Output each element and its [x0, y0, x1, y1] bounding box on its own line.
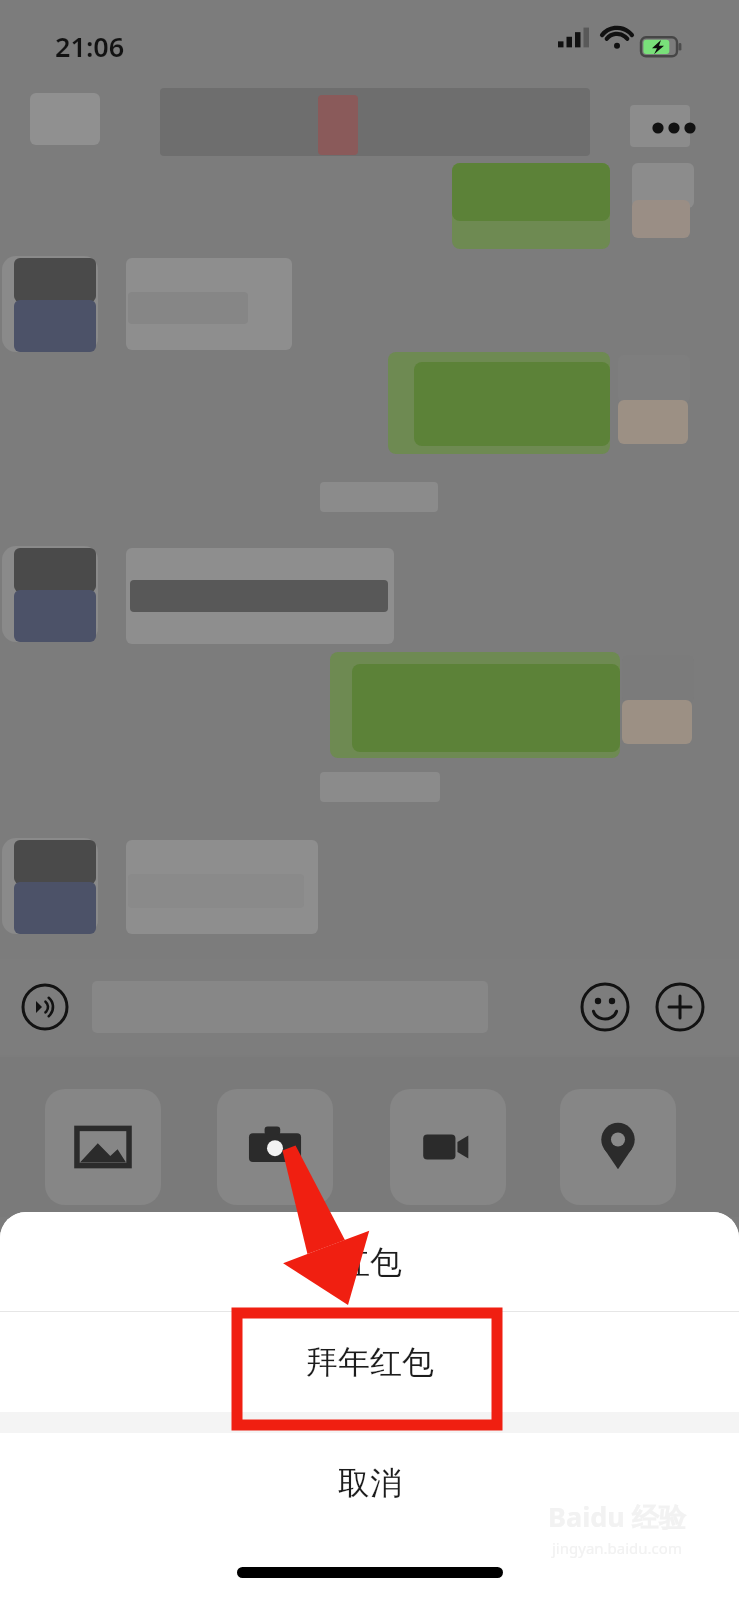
staticText: 21:06 [55, 28, 125, 65]
button[interactable]: 红包 [0, 1212, 739, 1311]
button[interactable]: Emoji [580, 982, 630, 1032]
button[interactable]: Location [560, 1089, 676, 1205]
staticText: jingyan.baidu.com [552, 1538, 682, 1558]
button[interactable]: 拜年红包 [0, 1312, 739, 1412]
button[interactable]: Photo [45, 1089, 161, 1205]
button[interactable]: Camera [217, 1089, 333, 1205]
button[interactable]: 取消 [0, 1433, 739, 1532]
staticText: 拜年红包 [306, 1342, 434, 1382]
staticText: Baidu 经验 [548, 1498, 686, 1535]
button[interactable]: More attachments [655, 982, 705, 1032]
staticText: 红包 [338, 1242, 402, 1282]
button[interactable]: Video call [390, 1089, 506, 1205]
button[interactable]: Voice message [21, 983, 69, 1031]
staticText: 取消 [338, 1463, 402, 1503]
